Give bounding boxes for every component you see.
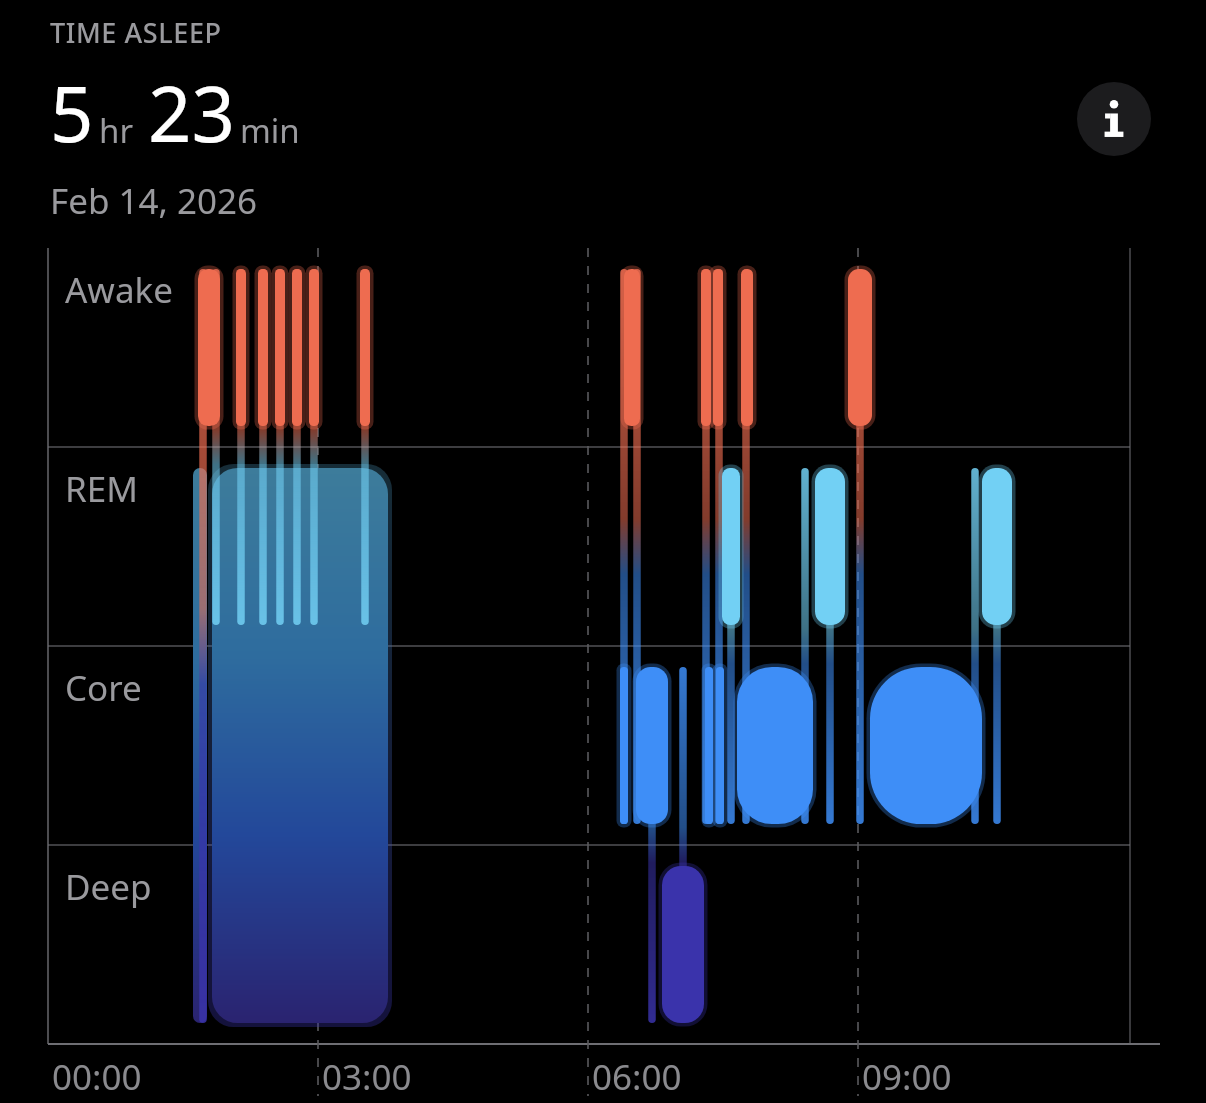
staticText: Deep [65,863,152,911]
staticText: 06:00 [592,1053,682,1101]
staticText: 23 [148,61,235,165]
staticText: Core [65,664,142,712]
staticText: 5 [50,61,94,165]
staticText: 03:00 [322,1053,412,1101]
staticText: Awake [65,266,173,314]
staticText: 09:00 [862,1053,952,1101]
staticText: 00:00 [52,1053,142,1101]
staticText: min [240,108,300,153]
button[interactable]: About time asleep [1077,82,1151,156]
staticText: hr [99,108,134,153]
staticText: REM [65,465,138,513]
staticText: Feb 14, 2026 [50,177,258,225]
staticText: TIME ASLEEP [50,14,222,51]
